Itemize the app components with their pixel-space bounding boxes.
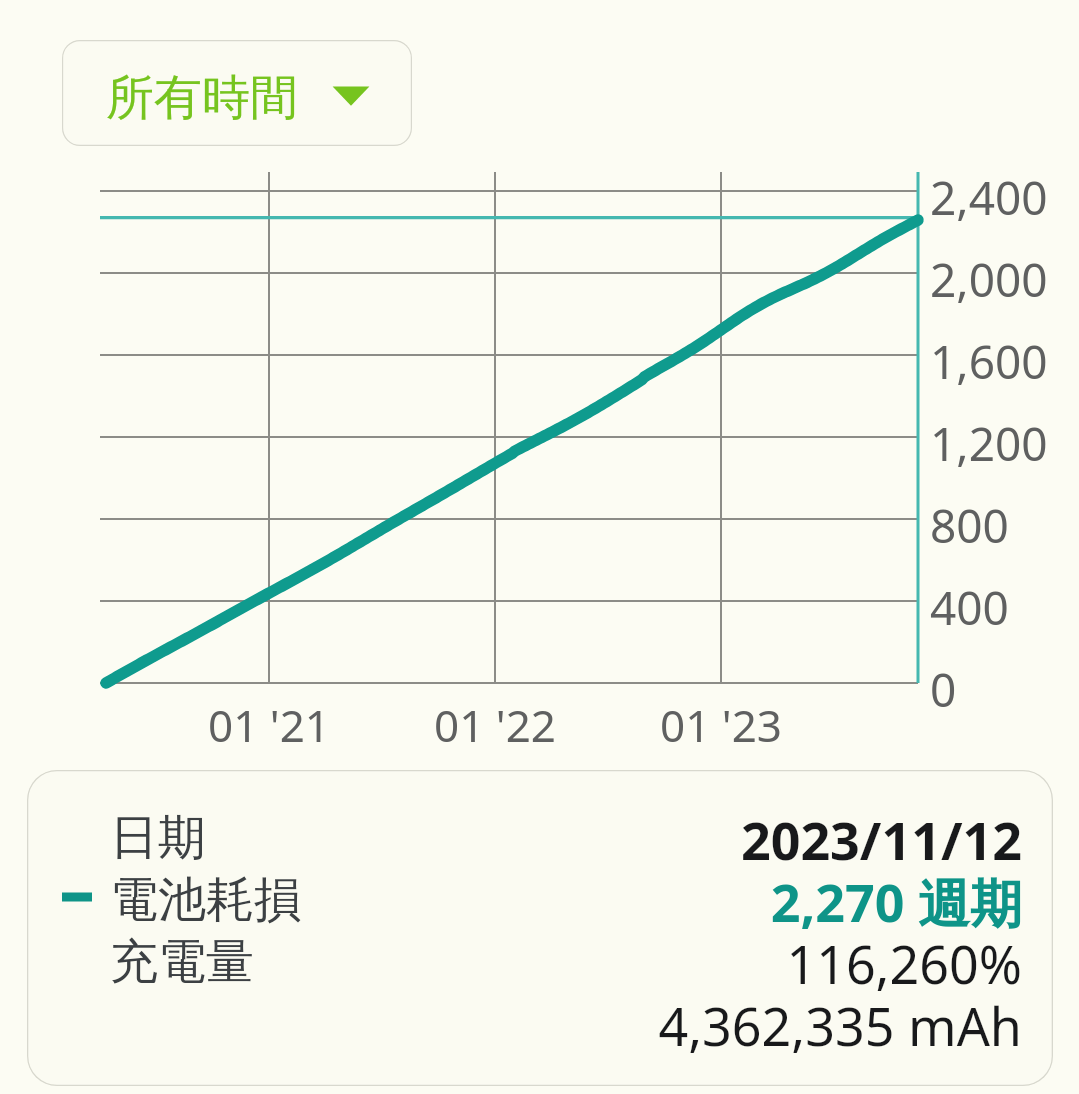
staticText: 01 '22 xyxy=(395,695,595,755)
staticText: 400 xyxy=(930,576,1009,639)
staticText: 01 '21 xyxy=(169,695,369,755)
staticText: 日期 xyxy=(110,808,206,868)
staticText: 0 xyxy=(930,658,957,721)
staticText: 2,270 週期 xyxy=(307,866,1022,937)
staticText: 2023/11/12 xyxy=(307,804,1022,875)
staticText: 2,400 xyxy=(930,166,1048,229)
button[interactable]: 所有時間 時間範圍選擇 xyxy=(62,40,412,146)
staticText: 1,600 xyxy=(930,330,1048,393)
staticText: 所有時間 xyxy=(106,68,298,128)
button[interactable]: 日期 xyxy=(27,770,1053,1086)
staticText: 4,362,335 mAh xyxy=(307,990,1022,1061)
staticText: 1,200 xyxy=(930,412,1048,475)
staticText: 充電量 xyxy=(110,932,254,992)
staticText: 01 '23 xyxy=(621,695,821,755)
staticText: 電池耗損 xyxy=(110,870,302,930)
staticText: 2,000 xyxy=(930,248,1048,311)
staticText: 800 xyxy=(930,494,1009,557)
staticText: 116,260% xyxy=(307,928,1022,999)
